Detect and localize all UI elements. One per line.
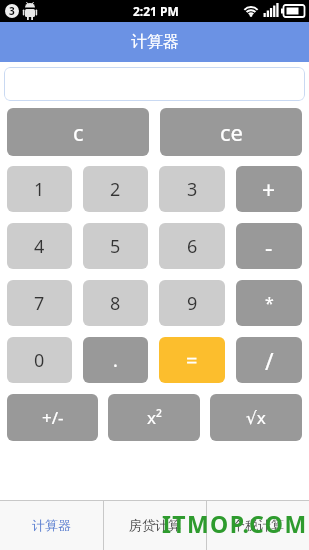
staticText: * [265, 292, 274, 314]
staticText: √x [246, 406, 266, 429]
button[interactable]: 3 [159, 166, 225, 212]
staticText: 个税计算 [232, 517, 284, 533]
staticText: ITMOP.COM [162, 508, 308, 539]
button[interactable]: * [236, 280, 302, 326]
button[interactable]: 8 [83, 280, 148, 326]
button[interactable]: 7 [7, 280, 72, 326]
button[interactable]: +/- [7, 394, 98, 441]
staticText: x² [147, 406, 162, 429]
staticText: = [186, 347, 198, 374]
staticText: - [265, 231, 273, 262]
button[interactable]: c [7, 108, 149, 156]
button[interactable]: √x [210, 394, 302, 441]
staticText: . [113, 348, 118, 373]
staticText: 3 [9, 4, 15, 18]
button[interactable]: 4 [7, 223, 72, 269]
staticText: 8 [110, 291, 121, 316]
button[interactable]: 5 [83, 223, 148, 269]
staticText: 1 [34, 177, 45, 202]
button[interactable]: 计算器 [0, 500, 103, 550]
staticText: 3 [187, 177, 198, 202]
button[interactable]: 6 [159, 223, 225, 269]
staticText: 5 [110, 234, 121, 259]
button[interactable]: . [83, 337, 148, 383]
staticText: 4 [34, 234, 45, 259]
staticText: 6 [187, 234, 198, 259]
staticText: 0 [34, 348, 45, 373]
staticText: 9 [187, 291, 198, 316]
button[interactable]: 1 [7, 166, 72, 212]
button[interactable]: ce [160, 108, 302, 156]
button[interactable]: = [159, 337, 225, 383]
staticText: 计算器 [131, 32, 179, 52]
staticText: 2 [110, 177, 121, 202]
staticText: / [265, 345, 274, 376]
button[interactable]: 个税计算 [207, 500, 309, 550]
button[interactable]: - [236, 223, 302, 269]
button[interactable]: 房贷计算 [104, 500, 206, 550]
staticText: 计算器 [32, 517, 71, 533]
staticText: c [73, 117, 84, 147]
button[interactable]: x² [108, 394, 200, 441]
button[interactable] [4, 67, 305, 101]
button[interactable]: / [236, 337, 302, 383]
staticText: + [262, 174, 276, 205]
button[interactable]: 9 [159, 280, 225, 326]
staticText: +/- [42, 406, 64, 429]
button[interactable]: 0 [7, 337, 72, 383]
staticText: ce [220, 117, 243, 147]
staticText: 2:21 PM [133, 3, 179, 19]
button[interactable]: + [236, 166, 302, 212]
button[interactable]: 2 [83, 166, 148, 212]
staticText: 7 [34, 291, 45, 316]
staticText: 房贷计算 [129, 517, 181, 533]
